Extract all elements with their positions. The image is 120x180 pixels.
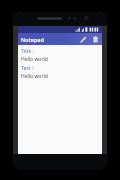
staticText: Hello world [21,56,48,63]
button[interactable]: Edit note [78,34,88,44]
staticText: Title : [21,48,34,55]
staticText: Notepad [21,36,44,43]
staticText: Text : [21,65,34,72]
button[interactable]: Delete note [90,34,100,44]
staticText: Hello world [21,73,48,80]
